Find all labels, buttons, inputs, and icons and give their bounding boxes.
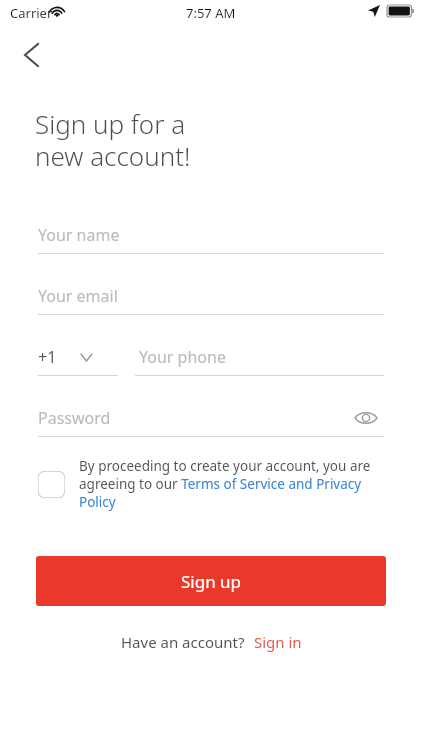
button[interactable]: Sign up — [36, 556, 386, 606]
button[interactable]: Your phone — [139, 338, 384, 376]
staticText: +1 — [38, 346, 57, 368]
staticText: By proceeding to create your account, yo… — [79, 457, 379, 511]
staticText: 7:57 AM — [186, 4, 236, 22]
button[interactable]: +1 — [38, 338, 118, 376]
staticText: Carrier — [10, 4, 53, 22]
button[interactable]: Your email — [38, 277, 384, 315]
staticText: Your name — [38, 224, 120, 246]
staticText: Password — [38, 407, 111, 429]
staticText: Your phone — [139, 346, 226, 368]
staticText: Sign up for a — [35, 106, 186, 141]
staticText: Sign in — [254, 632, 302, 652]
staticText: new account! — [35, 138, 191, 173]
button[interactable]: Password — [38, 399, 338, 437]
staticText: Your email — [38, 285, 118, 307]
button[interactable]: By proceeding to create your account, yo… — [79, 457, 379, 515]
staticText: Have an account? — [121, 632, 245, 652]
button[interactable]: Sign in — [254, 632, 302, 652]
button[interactable]: Show password — [348, 400, 384, 436]
button[interactable]: Accept terms and conditions — [38, 471, 65, 498]
staticText: Sign up — [181, 570, 242, 593]
button[interactable]: Your name — [38, 216, 384, 254]
button[interactable]: Back — [10, 34, 52, 76]
